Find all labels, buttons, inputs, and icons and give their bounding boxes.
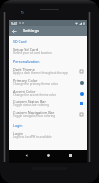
staticText: Accent Color	[13, 89, 36, 94]
staticText: SD Card	[13, 39, 27, 44]
button[interactable]: Setup Sd Card	[9, 46, 87, 57]
staticText: Change the primary theme color	[13, 82, 58, 86]
staticText: Change the accent theme color	[13, 93, 57, 97]
staticText: Primary Color	[13, 78, 38, 83]
button[interactable]: Dark Theme	[9, 66, 87, 77]
button[interactable]: Home	[43, 150, 53, 163]
staticText: Toggle status bar coloring	[13, 103, 49, 107]
button[interactable]: Login	[9, 130, 87, 141]
staticText: Custom Status Bar	[13, 99, 47, 104]
staticText: Login	[13, 123, 23, 128]
button[interactable]: Back	[10, 26, 19, 36]
staticText: Login to LastPW to available	[13, 135, 52, 139]
staticText: Login	[13, 131, 23, 136]
staticText: 9:41	[11, 21, 18, 25]
staticText: Custom Navigation Bar	[13, 110, 55, 115]
button[interactable]: Recents	[65, 150, 75, 163]
staticText: Define your sd card location	[13, 51, 52, 55]
button[interactable]: Back	[21, 150, 31, 163]
button[interactable]: Custom Status Bar	[9, 98, 87, 109]
staticText: Settings	[23, 28, 39, 34]
staticText: Toggle navigation bar coloring	[13, 114, 56, 118]
staticText: Personalization	[13, 59, 40, 64]
staticText: Apply a dark theme throughout the app	[13, 71, 68, 75]
button[interactable]: Primary Color	[9, 77, 87, 88]
staticText: Dark Theme	[13, 67, 35, 72]
staticText: Setup Sd Card	[13, 47, 39, 52]
button[interactable]: Accent Color	[9, 88, 87, 99]
button[interactable]: Custom Navigation Bar	[9, 109, 87, 120]
